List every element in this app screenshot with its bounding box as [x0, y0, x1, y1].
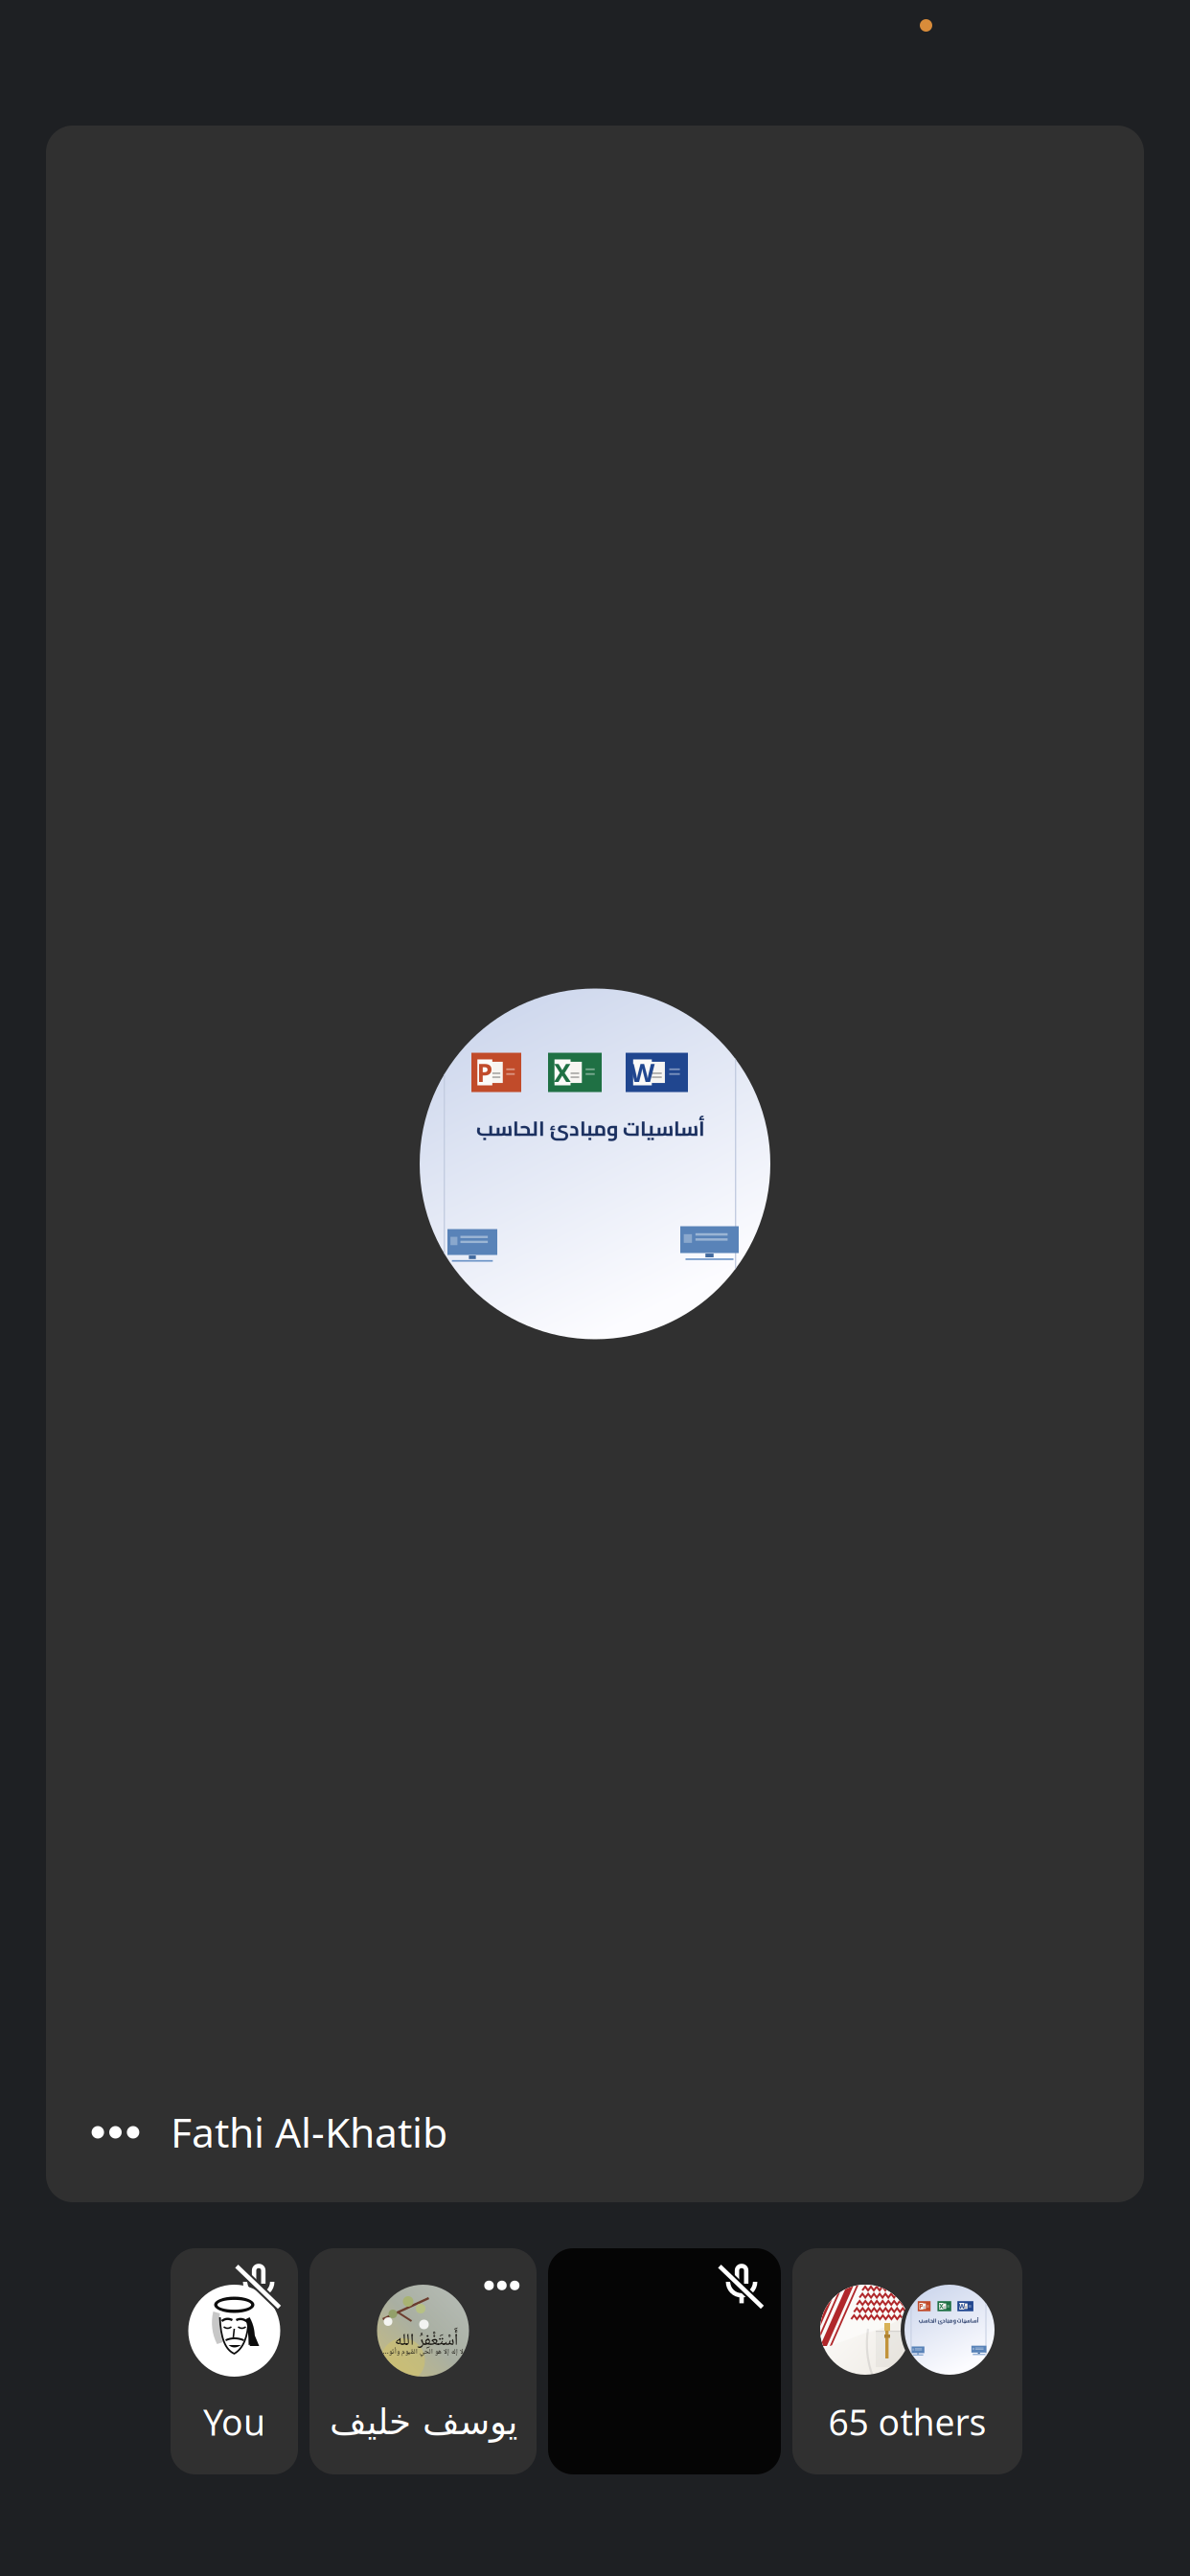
staticText: You: [203, 2398, 265, 2445]
staticText: أَسْتَغْفِرُ الله: [394, 2327, 458, 2355]
staticText: W: [959, 2302, 965, 2310]
staticText: P: [477, 1055, 493, 1089]
staticText: لا إله إلا هو الحي القيوم وأتوب إليه: [383, 2346, 463, 2358]
staticText: أساسيات ومبادئ الحاسب: [476, 1109, 705, 1148]
button[interactable]: P: [792, 2248, 1022, 2474]
staticText: 65 others: [828, 2398, 986, 2445]
button[interactable]: You: [171, 2248, 298, 2474]
staticText: X: [554, 1055, 571, 1089]
staticText: يوسف خليف: [329, 2401, 517, 2442]
staticText: Fathi Al-Khatib: [171, 2104, 447, 2159]
staticText: X: [939, 2302, 943, 2310]
button[interactable]: [548, 2248, 781, 2474]
staticText: أساسيات ومبادئ الحاسب: [918, 2316, 978, 2326]
staticText: W: [630, 1055, 655, 1089]
button[interactable]: More options: [69, 2091, 162, 2173]
button[interactable]: أَسْتَغْفِرُ الله: [309, 2248, 537, 2474]
staticText: P: [919, 2302, 923, 2310]
